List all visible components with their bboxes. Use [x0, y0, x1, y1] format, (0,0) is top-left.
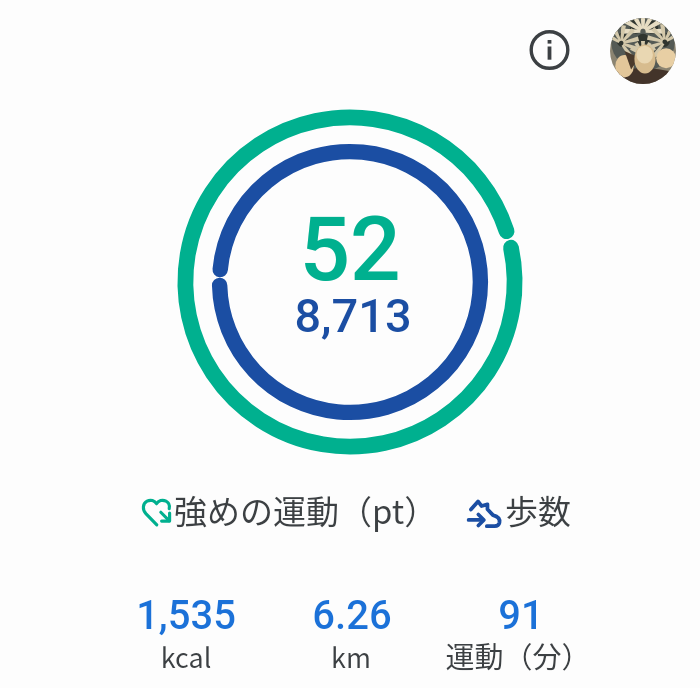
staticText: 91: [411, 592, 631, 639]
button[interactable]: 1,535: [76, 588, 296, 684]
button[interactable]: 6.26: [242, 588, 462, 684]
staticText: 1,535: [76, 592, 296, 639]
staticText: kcal: [76, 637, 296, 676]
button[interactable]: Daily activity goal: 52 Heart Points, 8,…: [170, 102, 530, 462]
button[interactable]: Profile: [610, 18, 676, 84]
button[interactable]: 歩数: [460, 486, 571, 538]
staticText: 6.26: [242, 592, 462, 639]
staticText: 強めの運動（pt）: [174, 486, 438, 534]
button[interactable]: 強めの運動（pt）: [136, 486, 438, 538]
button[interactable]: 91: [411, 588, 631, 684]
staticText: km: [241, 637, 461, 676]
button[interactable]: Info: [525, 25, 573, 73]
staticText: 52: [175, 197, 525, 301]
staticText: 歩数: [505, 486, 571, 534]
staticText: 8,713: [178, 288, 528, 343]
staticText: 運動（分）: [408, 634, 628, 676]
